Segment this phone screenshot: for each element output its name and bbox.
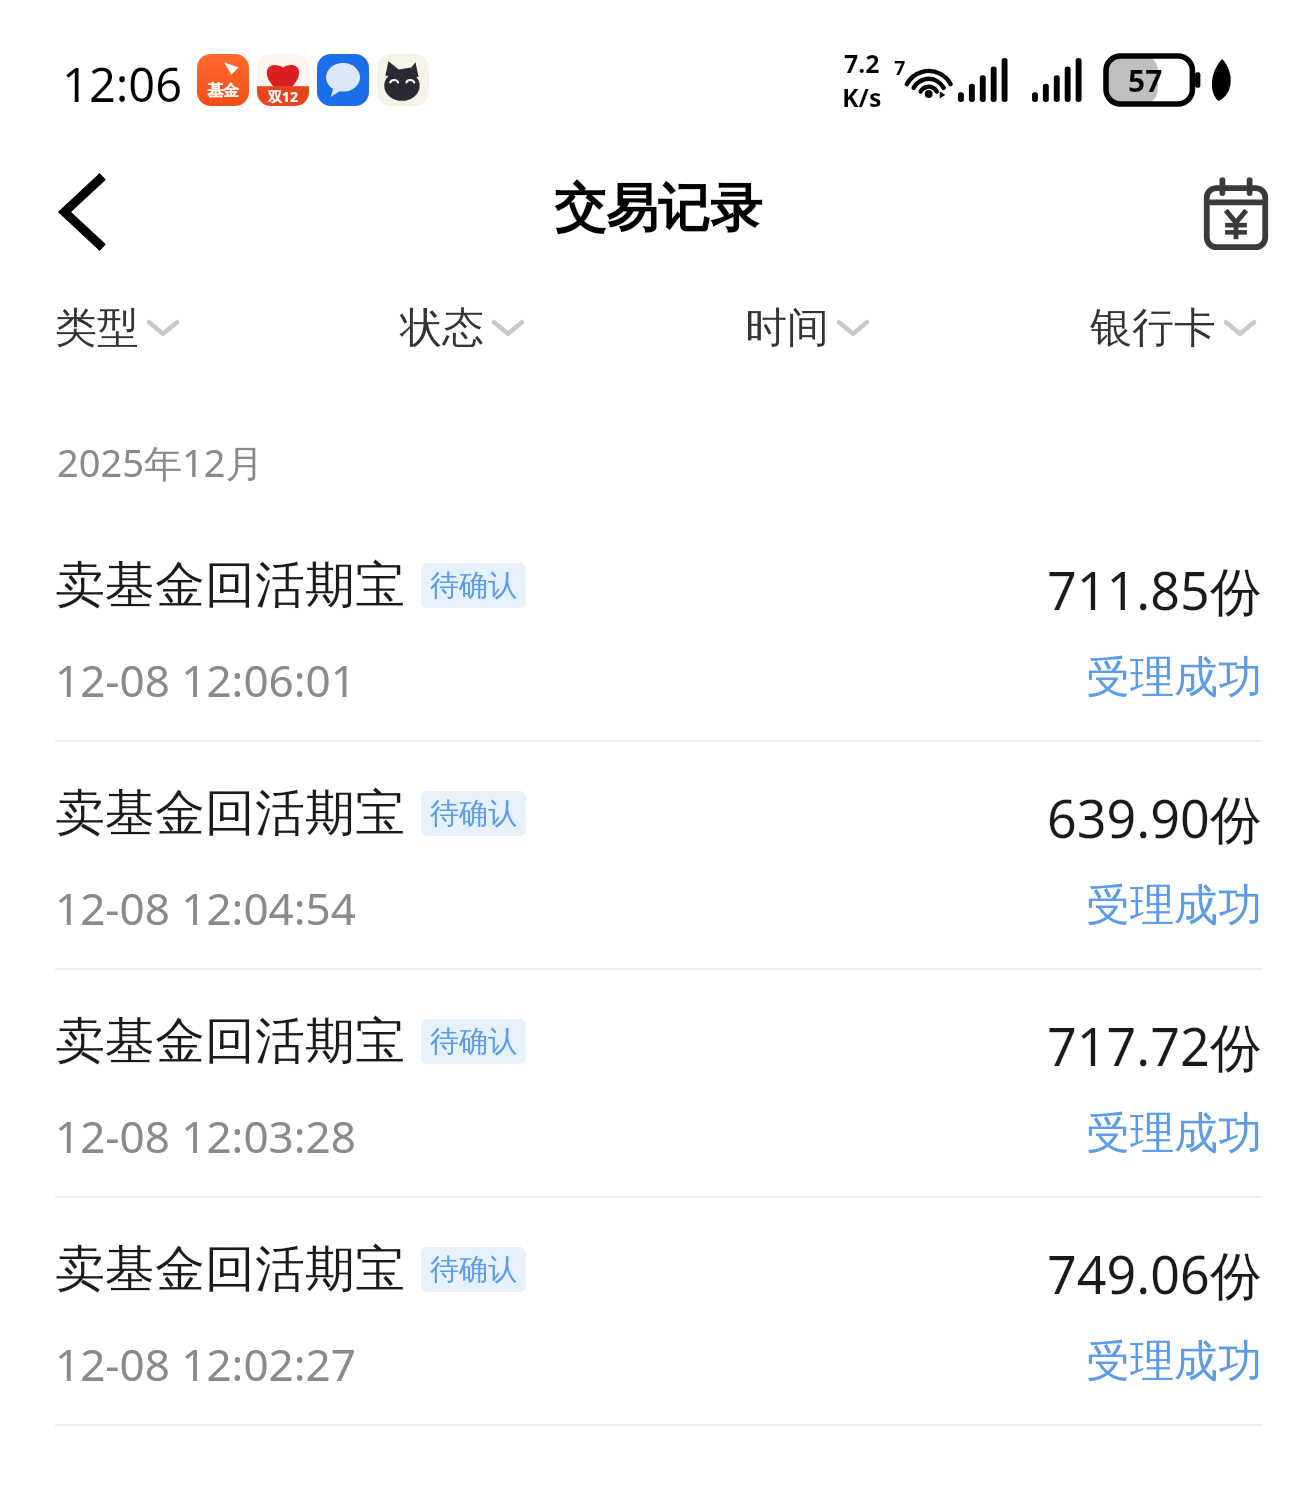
- staticText: 双12: [268, 87, 299, 106]
- staticText: 受理成功: [1086, 1334, 1262, 1389]
- button[interactable]: Back: [22, 172, 142, 252]
- staticText: 受理成功: [1086, 650, 1262, 705]
- staticText: 卖基金回活期宝: [55, 1238, 405, 1301]
- button[interactable]: 卖基金回活期宝: [0, 540, 1316, 768]
- button[interactable]: 卖基金回活期宝: [0, 1224, 1316, 1452]
- staticText: 12:06: [62, 52, 183, 116]
- button[interactable]: 卖基金回活期宝: [0, 996, 1316, 1224]
- staticText: 7: [894, 54, 906, 81]
- staticText: 12-08 12:04:54: [55, 878, 356, 938]
- staticText: 待确认: [430, 1023, 517, 1060]
- staticText: 银行卡: [1090, 302, 1216, 355]
- staticText: 卖基金回活期宝: [55, 554, 405, 617]
- button[interactable]: Bill calendar: [1186, 172, 1286, 256]
- staticText: 受理成功: [1086, 1106, 1262, 1161]
- staticText: 57: [1128, 60, 1163, 101]
- staticText: 639.90份: [1047, 782, 1262, 853]
- staticText: 711.85份: [1047, 554, 1262, 625]
- staticText: 卖基金回活期宝: [55, 1010, 405, 1073]
- button[interactable]: 时间: [745, 296, 867, 360]
- staticText: 2025年12月: [57, 436, 264, 488]
- staticText: 类型: [55, 302, 139, 355]
- staticText: 待确认: [430, 795, 517, 832]
- staticText: 时间: [745, 302, 829, 355]
- staticText: 717.72份: [1047, 1010, 1262, 1081]
- staticText: 7.2: [844, 46, 880, 80]
- button[interactable]: 状态: [400, 296, 522, 360]
- staticText: 12-08 12:03:28: [55, 1106, 356, 1166]
- staticText: 受理成功: [1086, 878, 1262, 933]
- staticText: 12-08 12:02:27: [55, 1334, 356, 1394]
- button[interactable]: 卖基金回活期宝: [0, 768, 1316, 996]
- staticText: 交易记录: [0, 176, 1316, 242]
- button[interactable]: 类型: [55, 296, 177, 360]
- staticText: 12-08 12:06:01: [55, 650, 356, 710]
- staticText: K/s: [842, 80, 882, 114]
- staticText: 待确认: [430, 567, 517, 604]
- button[interactable]: 银行卡: [1090, 296, 1254, 360]
- staticText: 基金: [207, 81, 239, 101]
- staticText: 状态: [400, 302, 484, 355]
- staticText: 待确认: [430, 1251, 517, 1288]
- staticText: 749.06份: [1047, 1238, 1262, 1309]
- staticText: 卖基金回活期宝: [55, 782, 405, 845]
